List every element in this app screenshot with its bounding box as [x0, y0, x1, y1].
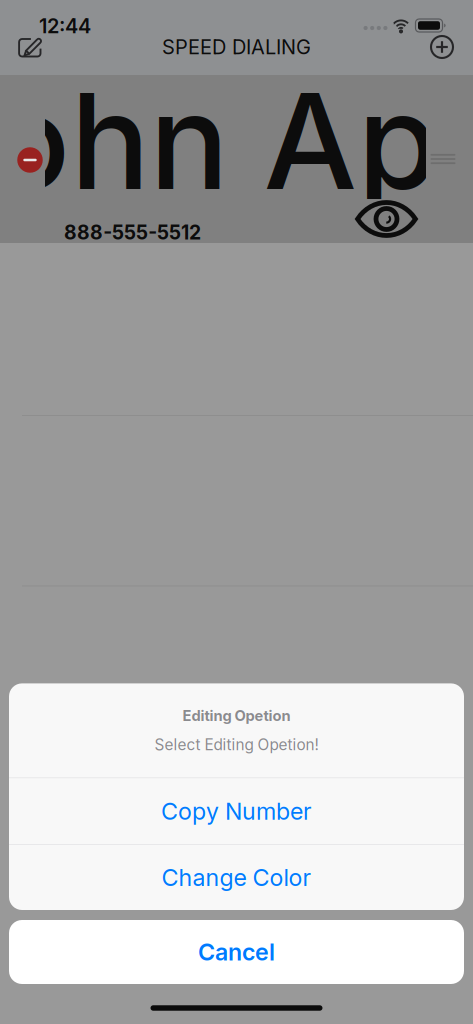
staticText: 12:44: [39, 14, 91, 38]
button[interactable]: Add contact: [420, 28, 464, 66]
staticText: Select Editing Opetion!: [154, 735, 318, 754]
staticText: 888-555-5512: [64, 221, 201, 244]
button[interactable]: Change Color: [9, 845, 464, 910]
staticText: Cancel: [198, 938, 275, 966]
staticText: John Apple: [0, 61, 473, 221]
staticText: Copy Number: [161, 797, 312, 825]
button[interactable]: Delete contact: [17, 147, 43, 173]
button[interactable]: Edit: [8, 29, 52, 67]
staticText: Change Color: [161, 863, 311, 892]
staticText: SPEED DIALING: [162, 35, 311, 59]
button[interactable]: Cancel: [9, 920, 464, 984]
button[interactable]: Copy Number: [9, 778, 464, 844]
staticText: Editing Opetion: [182, 707, 290, 724]
